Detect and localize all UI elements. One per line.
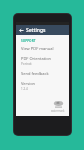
staticText: Settings [26, 27, 46, 34]
button[interactable]: View PDF manual [21, 43, 65, 53]
staticText: SUPPORT [21, 39, 36, 43]
staticText: PDF Orientation [21, 56, 52, 61]
button[interactable]: PDF Orientation [21, 53, 65, 68]
button[interactable]: Version [21, 78, 65, 93]
button[interactable]: Back [16, 25, 26, 35]
staticText: Version [21, 81, 36, 86]
staticText: Portrait [21, 62, 32, 66]
button[interactable]: Send feedback [21, 68, 65, 78]
staticText: View PDF manual [21, 46, 54, 51]
staticText: watermark [51, 109, 65, 113]
staticText: 1.2.4 [21, 87, 28, 91]
staticText: Send feedback [21, 71, 49, 76]
